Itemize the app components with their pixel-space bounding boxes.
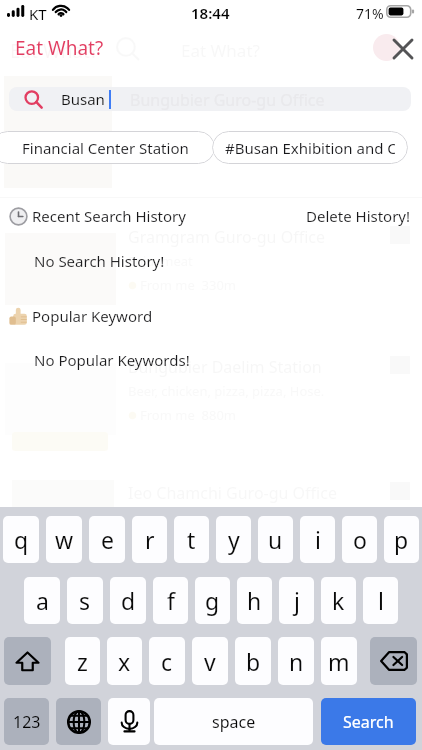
staticText: b	[246, 646, 261, 677]
staticText: i	[315, 524, 321, 555]
button[interactable]: #Busan Exhibition and Convention Center	[212, 131, 408, 164]
button[interactable]: z	[65, 637, 100, 685]
staticText: h	[247, 585, 262, 616]
button[interactable]: Backspace	[370, 637, 417, 685]
button[interactable]: s	[67, 577, 103, 624]
staticText: w	[55, 524, 74, 555]
button[interactable]: Busan	[9, 87, 411, 111]
staticText: e	[101, 524, 114, 555]
button[interactable]: l	[363, 577, 398, 624]
staticText: Eat What?	[10, 38, 99, 64]
button[interactable]: a	[24, 577, 60, 624]
button[interactable]: d	[110, 577, 146, 624]
button[interactable]: w	[46, 516, 82, 563]
button[interactable]: Shift	[4, 637, 51, 685]
button[interactable]: k	[321, 577, 356, 624]
button[interactable]: c	[149, 637, 185, 685]
button[interactable]: Dictation	[108, 698, 150, 745]
staticText: o	[353, 524, 367, 555]
staticText: n	[289, 646, 304, 677]
button[interactable]: v	[192, 637, 228, 685]
staticText: t	[187, 524, 196, 555]
staticText: Busan	[61, 89, 105, 109]
staticText: z	[77, 646, 88, 677]
staticText: No Popular Keywords!	[34, 350, 190, 370]
button[interactable]: Delete History!	[306, 206, 411, 226]
staticText: s	[79, 585, 91, 616]
button[interactable]: g	[195, 577, 230, 624]
staticText: Bungubier Daelim Station	[128, 356, 322, 378]
button[interactable]: q	[3, 516, 39, 563]
button[interactable]: e	[89, 516, 125, 563]
staticText: KT	[29, 4, 47, 24]
staticText: y	[228, 524, 240, 555]
staticText: c	[161, 646, 173, 677]
staticText: f	[167, 585, 175, 616]
staticText: No Search History!	[34, 251, 165, 271]
staticText: Popular Keyword	[32, 306, 153, 326]
button[interactable]: f	[153, 577, 188, 624]
button[interactable]: n	[278, 637, 314, 685]
staticText: q	[14, 524, 29, 555]
staticText: r	[145, 524, 155, 555]
staticText: #Busan Exhibition and Convention Center	[225, 138, 395, 158]
button[interactable]: space	[154, 698, 313, 745]
staticText: p	[394, 524, 409, 555]
staticText: x	[118, 646, 131, 677]
staticText: a	[36, 585, 49, 616]
staticText: Eat What?	[15, 35, 104, 61]
button[interactable]: x	[107, 637, 142, 685]
button[interactable]: 123	[4, 698, 49, 745]
staticText: g	[205, 585, 220, 616]
staticText: u	[268, 524, 283, 555]
button[interactable]: b	[235, 637, 271, 685]
button[interactable]: Search	[321, 698, 416, 745]
staticText: j	[294, 585, 300, 616]
button[interactable]: h	[237, 577, 272, 624]
staticText: k	[332, 585, 345, 616]
button[interactable]: i	[300, 516, 335, 563]
staticText: Soju, meat	[128, 252, 193, 270]
staticText: v	[204, 646, 216, 677]
staticText: l	[378, 585, 384, 616]
button[interactable]: u	[258, 516, 293, 563]
button[interactable]: p	[384, 516, 419, 563]
staticText: Delete History!	[306, 206, 411, 226]
staticText: d	[121, 585, 136, 616]
staticText: Search	[343, 711, 394, 733]
button[interactable]: Change keyboard	[56, 698, 101, 745]
staticText: 123	[13, 711, 41, 733]
button[interactable]: j	[279, 577, 314, 624]
button[interactable]: o	[342, 516, 377, 563]
button[interactable]: m	[321, 637, 357, 685]
button[interactable]: r	[132, 516, 167, 563]
staticText: Financial Center Station	[22, 138, 189, 158]
staticText: m	[328, 646, 350, 677]
staticText: 71%	[356, 4, 384, 23]
button[interactable]: Close	[386, 32, 419, 65]
staticText: 18:44	[191, 3, 230, 23]
button[interactable]: y	[216, 516, 251, 563]
staticText: space	[212, 711, 256, 733]
staticText: Recent Search History	[32, 206, 186, 226]
button[interactable]: Financial Center Station	[0, 131, 215, 164]
button[interactable]: t	[174, 516, 209, 563]
